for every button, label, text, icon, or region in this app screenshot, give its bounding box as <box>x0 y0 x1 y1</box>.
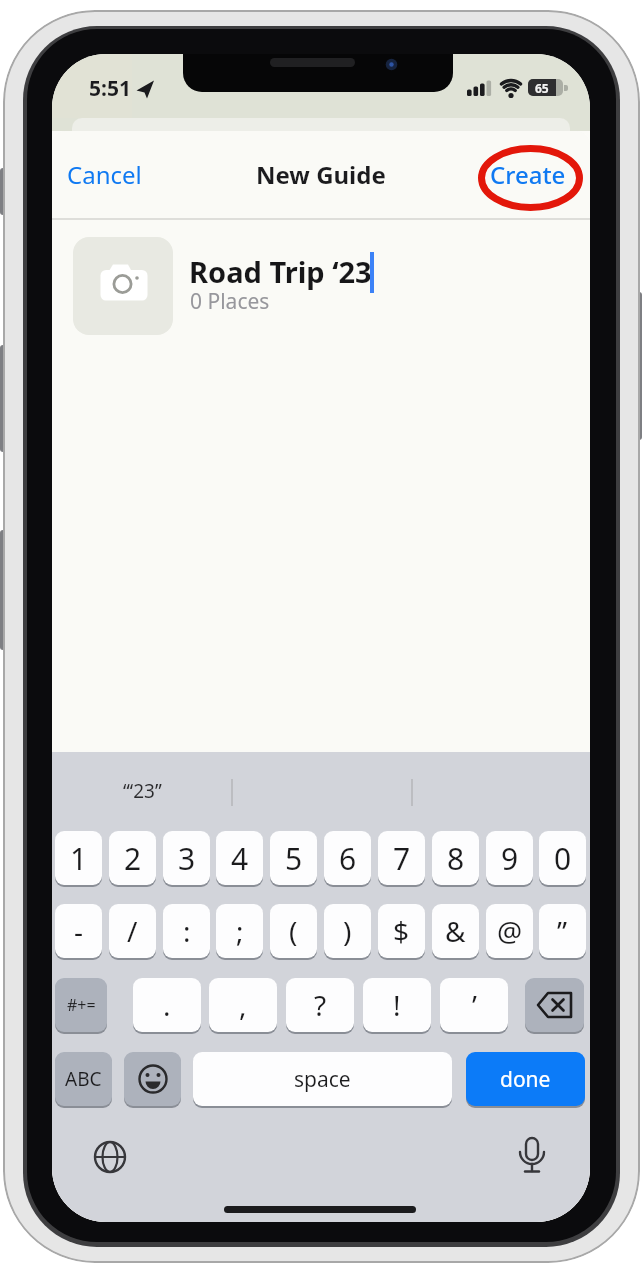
button[interactable]: & <box>432 904 479 958</box>
staticText: 0 <box>554 838 572 879</box>
button[interactable]: 1 <box>55 831 102 885</box>
button[interactable]: 3 <box>163 831 210 885</box>
button[interactable]: ABC <box>55 1052 112 1106</box>
button[interactable]: 7 <box>378 831 425 885</box>
staticText: : <box>183 912 191 950</box>
staticText: 3 <box>178 838 196 879</box>
staticText: 8 <box>447 838 465 879</box>
button[interactable]: - <box>55 904 102 958</box>
staticText: done <box>500 1065 551 1094</box>
staticText: 5:51 <box>89 74 131 103</box>
staticText: Create <box>490 158 566 191</box>
staticText: #+= <box>67 994 96 1016</box>
staticText: ” <box>557 912 568 950</box>
button[interactable]: ; <box>216 904 263 958</box>
button[interactable]: , <box>209 978 277 1032</box>
staticText: , <box>239 986 247 1024</box>
button[interactable]: done <box>466 1052 585 1106</box>
staticText: 9 <box>501 838 519 879</box>
button[interactable]: 0 <box>539 831 586 885</box>
button[interactable]: ) <box>324 904 371 958</box>
button[interactable] <box>73 237 173 335</box>
staticText: Road Trip ‘23 <box>189 252 372 291</box>
button[interactable]: Create <box>478 152 578 197</box>
staticText: @ <box>497 912 523 950</box>
staticText: 4 <box>231 838 249 879</box>
staticText: “‘23” <box>123 778 162 804</box>
button[interactable]: 4 <box>216 831 263 885</box>
button[interactable] <box>525 978 584 1032</box>
button[interactable]: ? <box>286 978 354 1032</box>
staticText: 7 <box>393 838 411 879</box>
button[interactable]: 9 <box>486 831 533 885</box>
staticText: ’ <box>472 986 477 1024</box>
staticText: ? <box>314 986 327 1024</box>
staticText: 2 <box>124 838 142 879</box>
staticText: Cancel <box>67 158 142 191</box>
staticText: ( <box>289 912 298 950</box>
button[interactable]: 8 <box>432 831 479 885</box>
staticText: ) <box>343 912 352 950</box>
button[interactable]: : <box>163 904 210 958</box>
staticText: 1 <box>70 838 88 879</box>
staticText: . <box>163 986 171 1024</box>
button[interactable]: ( <box>270 904 317 958</box>
button[interactable]: space <box>193 1052 452 1106</box>
staticText: $ <box>393 912 410 950</box>
button[interactable]: . <box>133 978 201 1032</box>
button[interactable]: ” <box>539 904 586 958</box>
button[interactable]: / <box>109 904 156 958</box>
button[interactable] <box>124 1052 181 1106</box>
staticText: - <box>74 912 84 950</box>
button[interactable]: 6 <box>324 831 371 885</box>
button[interactable]: “‘23” <box>92 777 192 805</box>
staticText: ! <box>393 986 401 1024</box>
staticText: ABC <box>65 1066 102 1092</box>
button[interactable]: @ <box>486 904 533 958</box>
button[interactable]: ’ <box>440 978 508 1032</box>
staticText: 5 <box>285 838 303 879</box>
staticText: ; <box>236 912 244 950</box>
button[interactable]: Cancel <box>67 152 162 197</box>
staticText: space <box>294 1065 351 1094</box>
staticText: New Guide <box>256 158 386 191</box>
button[interactable]: $ <box>378 904 425 958</box>
staticText: / <box>127 912 138 950</box>
staticText: 0 Places <box>190 287 270 316</box>
staticText: & <box>445 912 466 950</box>
button[interactable]: ! <box>363 978 431 1032</box>
button[interactable]: 2 <box>109 831 156 885</box>
button[interactable]: #+= <box>55 978 107 1032</box>
button[interactable]: 5 <box>270 831 317 885</box>
staticText: 6 <box>339 838 357 879</box>
staticText: 65 <box>535 80 549 96</box>
